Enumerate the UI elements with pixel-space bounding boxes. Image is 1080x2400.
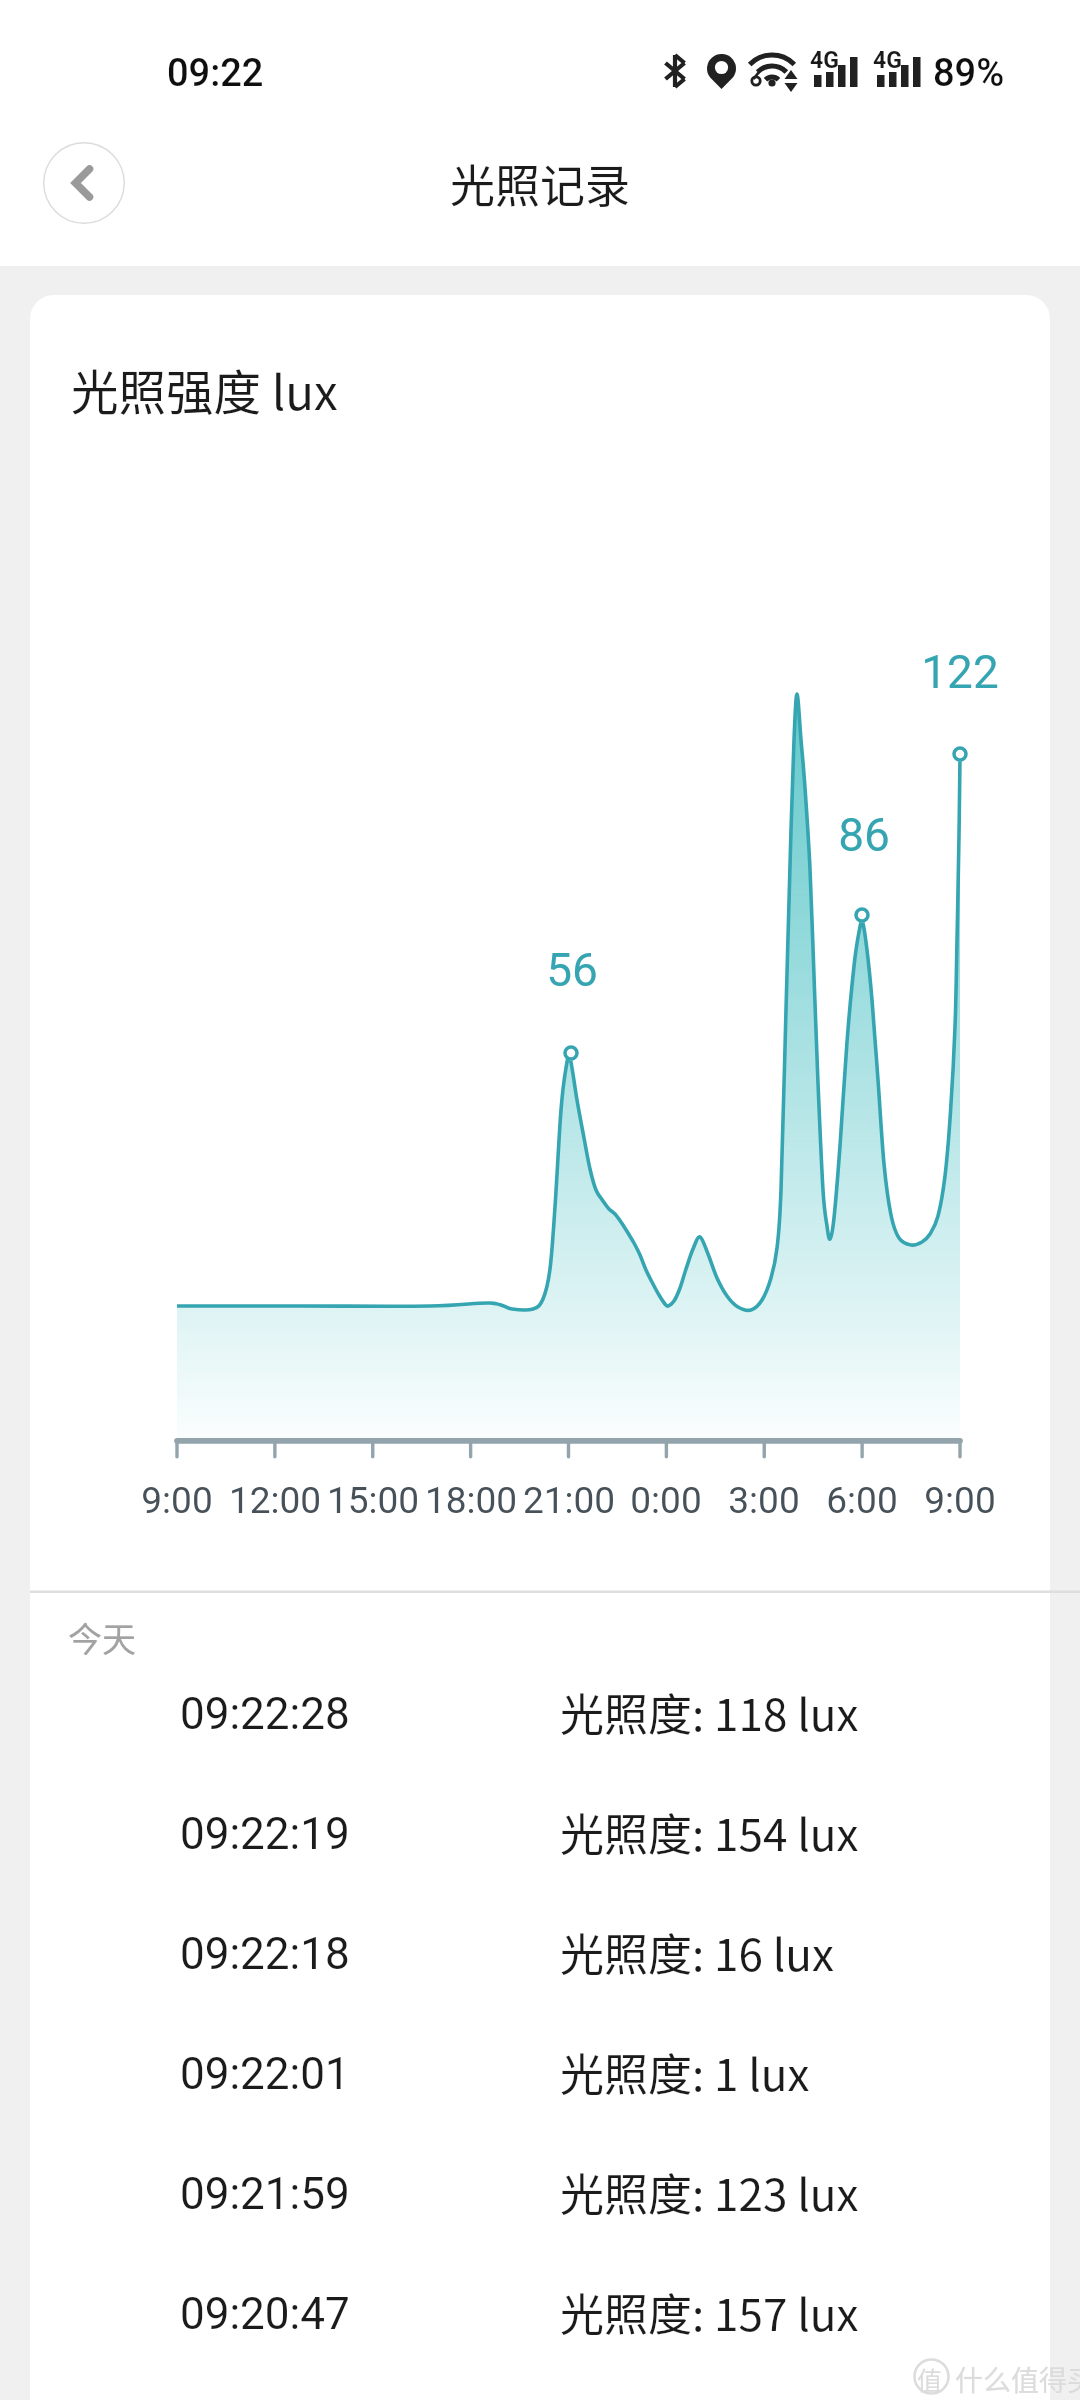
staticText: 09:22:19 [180, 1808, 350, 1860]
staticText: 56 [492, 943, 652, 997]
button[interactable]: 09:22:19 [30, 1772, 1050, 1892]
staticText: 09:22:01 [180, 2048, 350, 2100]
staticText: 09:22:18 [180, 1928, 350, 1980]
staticText: 光照度: 157 lux [560, 2280, 859, 2344]
staticText: 9:00 [107, 1479, 247, 1522]
staticText: 0:00 [596, 1479, 736, 1522]
staticText: 09:20:47 [180, 2288, 350, 2340]
staticText: 3:00 [694, 1479, 834, 1522]
staticText: 18:00 [401, 1479, 541, 1522]
staticText: 09:22 [167, 51, 264, 96]
button[interactable]: 09:22:28 [30, 1652, 1050, 1772]
staticText: 光照强度 lux [71, 355, 338, 424]
staticText: 15:00 [303, 1479, 443, 1522]
staticText: 12:00 [205, 1479, 345, 1522]
button[interactable]: 09:21:59 [30, 2132, 1050, 2252]
button[interactable]: 09:22:01 [30, 2012, 1050, 2132]
staticText: 今天 [68, 1613, 136, 1662]
staticText: 09:21:59 [180, 2168, 350, 2220]
button[interactable]: 09:20:47 [30, 2252, 1050, 2372]
staticText: 21:00 [499, 1479, 639, 1522]
staticText: 09:22:28 [180, 1688, 350, 1740]
staticText: 光照度: 154 lux [560, 1800, 859, 1864]
staticText: 光照度: 16 lux [560, 1920, 834, 1984]
staticText: 4G [873, 47, 902, 74]
staticText: 4G [810, 47, 839, 74]
button[interactable]: 09:22:18 [30, 1892, 1050, 2012]
staticText: 光照度: 118 lux [560, 1680, 859, 1744]
staticText: 89% [933, 51, 1005, 96]
button[interactable]: Back [43, 142, 125, 224]
staticText: 值 [917, 2361, 943, 2397]
staticText: 光照度: 123 lux [560, 2160, 859, 2224]
staticText: 光照记录 [340, 151, 740, 216]
staticText: 6:00 [792, 1479, 932, 1522]
staticText: 光照度: 1 lux [560, 2040, 810, 2104]
staticText: 9:00 [890, 1479, 1030, 1522]
staticText: 122 [880, 645, 1040, 699]
staticText: 什么值得买 [955, 2359, 1080, 2400]
staticText: 86 [784, 808, 944, 862]
